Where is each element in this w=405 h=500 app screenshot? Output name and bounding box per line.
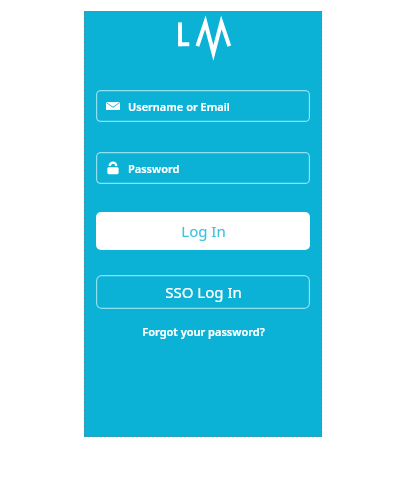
staticText: Log In (181, 221, 226, 241)
staticText: Username or Email (128, 99, 230, 114)
staticText: Forgot your password? (142, 324, 265, 339)
button[interactable]: Username or Email (96, 90, 310, 122)
button[interactable]: Log In (96, 212, 310, 250)
button[interactable]: SSO Log In (96, 275, 310, 309)
button[interactable]: Forgot your password? (136, 321, 271, 342)
staticText: Password (128, 161, 180, 176)
staticText: SSO Log In (165, 282, 242, 302)
button[interactable]: Password (96, 152, 310, 184)
